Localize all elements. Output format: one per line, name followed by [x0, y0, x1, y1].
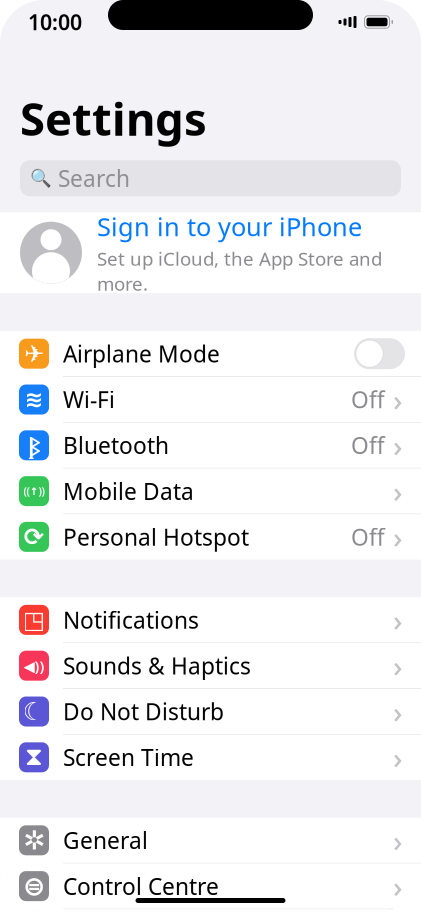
button[interactable]: ⊜ — [0, 864, 421, 909]
staticText: Airplane Mode — [63, 339, 220, 369]
staticText: 🔍 — [30, 168, 52, 188]
staticText: Off — [351, 430, 385, 460]
button[interactable]: AA — [0, 909, 421, 912]
staticText: ⊜ — [23, 871, 45, 901]
staticText: › — [393, 738, 403, 777]
staticText: Search — [58, 163, 130, 193]
staticText: ≋ — [24, 387, 43, 412]
staticText: ⟳ — [24, 523, 44, 550]
staticText: General — [63, 825, 148, 855]
staticText: Control Centre — [63, 871, 219, 901]
staticText: Notifications — [63, 605, 199, 635]
staticText: Set up iCloud, the App Store and more. — [97, 246, 382, 296]
staticText: ◳ — [22, 606, 45, 633]
staticText: › — [393, 426, 403, 465]
button[interactable]: ✈ — [0, 331, 421, 376]
staticText: ☾ — [22, 697, 45, 726]
staticText: Sign in to your iPhone — [97, 210, 362, 243]
staticText: › — [393, 646, 403, 685]
staticText: ◀)) — [23, 656, 44, 675]
staticText: Settings — [20, 88, 207, 148]
staticText: › — [393, 600, 403, 639]
staticText: ᛒ — [28, 430, 40, 460]
button[interactable]: ✲ — [0, 818, 421, 863]
staticText: › — [393, 472, 403, 511]
staticText: Off — [351, 522, 385, 552]
staticText: › — [393, 517, 403, 556]
button[interactable]: ((↑)) — [0, 469, 421, 514]
button[interactable]: ⟳ — [0, 514, 421, 559]
button[interactable]: ≋ — [0, 377, 421, 422]
staticText: › — [393, 867, 403, 906]
staticText: › — [393, 692, 403, 731]
button[interactable]: ◀)) — [0, 643, 421, 688]
staticText: › — [393, 821, 403, 860]
staticText: › — [393, 380, 403, 419]
staticText: 10:00 — [28, 8, 82, 36]
staticText: ((↑)) — [23, 484, 44, 498]
button[interactable]: ◳ — [0, 597, 421, 642]
staticText: Do Not Disturb — [63, 696, 224, 726]
staticText: Wi-Fi — [63, 384, 115, 414]
staticText: ⧗ — [25, 745, 43, 770]
button[interactable]: ⧗ — [0, 735, 421, 780]
button[interactable]: Sign in to your iPhone — [0, 212, 421, 293]
button[interactable]: ᛒ — [0, 423, 421, 468]
staticText: Screen Time — [63, 742, 194, 772]
button[interactable]: ☾ — [0, 689, 421, 734]
staticText: Off — [351, 384, 385, 414]
button[interactable]: 🔍 — [20, 160, 401, 196]
staticText: Sounds & Haptics — [63, 651, 251, 681]
staticText: ✲ — [23, 825, 45, 855]
staticText: Personal Hotspot — [63, 522, 249, 552]
staticText: Mobile Data — [63, 476, 194, 506]
staticText: Bluetooth — [63, 430, 169, 460]
staticText: ✈ — [24, 340, 44, 367]
